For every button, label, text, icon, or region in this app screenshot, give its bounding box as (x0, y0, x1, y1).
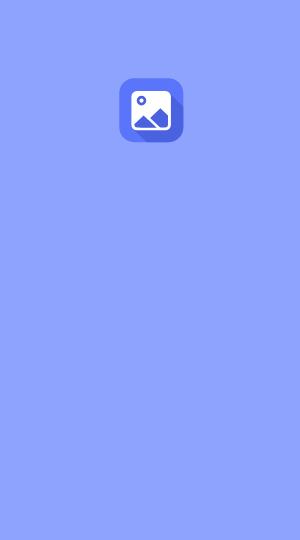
button[interactable]: Image placeholder (0, 0, 300, 540)
